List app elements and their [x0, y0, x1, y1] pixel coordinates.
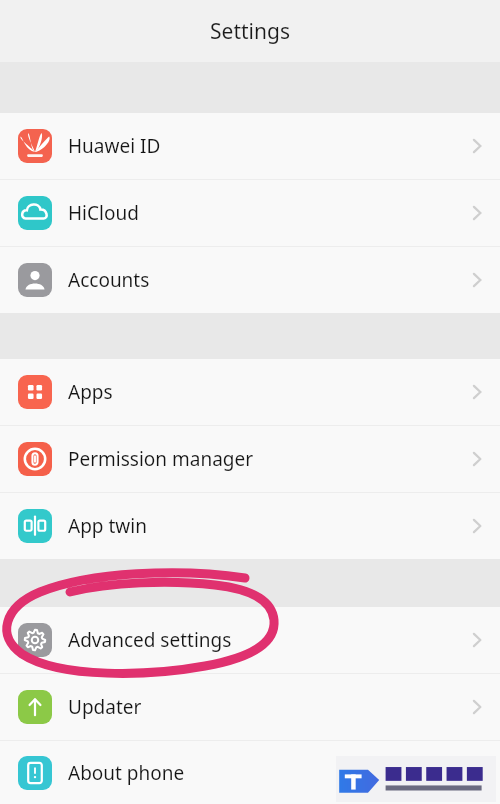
staticText: Accounts	[68, 267, 150, 293]
button[interactable]: Updater	[0, 674, 500, 740]
staticText: About phone	[68, 760, 185, 786]
button[interactable]: Permission manager	[0, 426, 500, 492]
button[interactable]: App twin	[0, 493, 500, 559]
button[interactable]: Apps	[0, 359, 500, 425]
staticText: App twin	[68, 513, 147, 539]
button[interactable]: About phone	[0, 741, 500, 804]
button[interactable]: Advanced settings	[0, 607, 500, 673]
button[interactable]: Accounts	[0, 247, 500, 313]
staticText: Settings	[210, 17, 290, 46]
staticText: Permission manager	[68, 446, 254, 472]
staticText: HiCloud	[68, 200, 139, 226]
staticText: Updater	[68, 694, 142, 720]
staticText: Advanced settings	[68, 627, 232, 653]
button[interactable]: HiCloud	[0, 180, 500, 246]
staticText: Apps	[68, 379, 113, 405]
staticText: Huawei ID	[68, 133, 161, 159]
button[interactable]: Huawei ID	[0, 113, 500, 179]
